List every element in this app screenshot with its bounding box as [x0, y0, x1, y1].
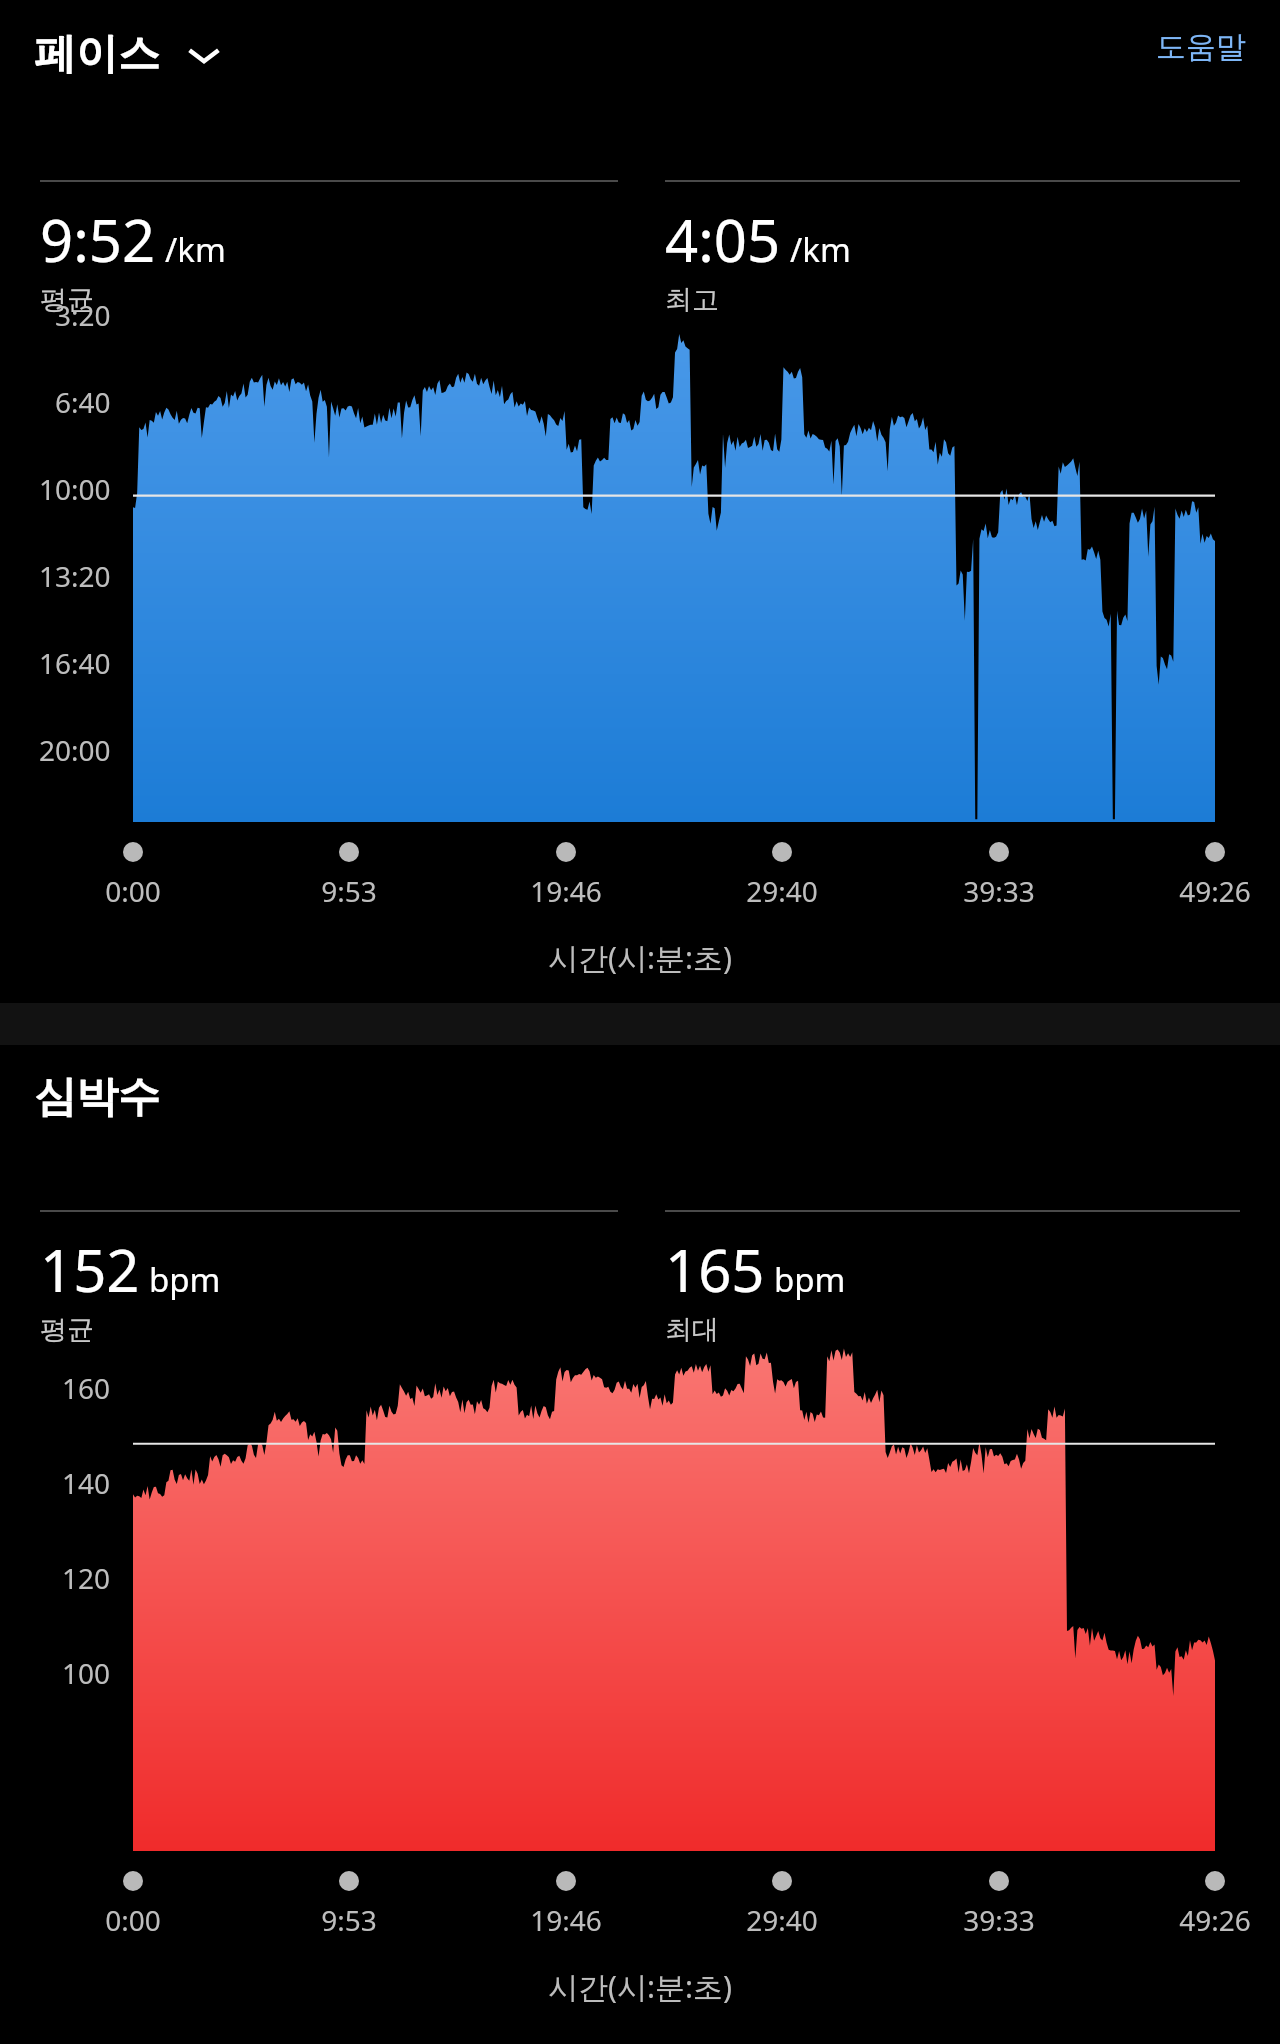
staticText: 49:26 — [1179, 872, 1251, 910]
staticText: 평균 — [40, 283, 94, 317]
staticText: 16:40 — [39, 644, 111, 682]
staticText: 9:52 — [40, 200, 156, 279]
staticText: 페이스 — [34, 28, 160, 81]
staticText: 최고 — [665, 283, 719, 317]
staticText: 49:26 — [1179, 1901, 1251, 1939]
staticText: 3:20 — [55, 296, 111, 334]
staticText: 0:00 — [105, 872, 161, 910]
staticText: 9:53 — [321, 872, 377, 910]
staticText: 29:40 — [746, 872, 818, 910]
staticText: /km — [790, 227, 851, 272]
staticText: 최대 — [665, 1313, 719, 1347]
staticText: bpm — [149, 1257, 221, 1302]
staticText: 9:53 — [321, 1901, 377, 1939]
staticText: 시간(시:분:초) — [548, 1966, 733, 2007]
staticText: 0:00 — [105, 1901, 161, 1939]
staticText: 152 — [40, 1230, 140, 1309]
staticText: 165 — [665, 1230, 765, 1309]
staticText: 19:46 — [530, 1901, 602, 1939]
staticText: 도움말 — [1156, 28, 1246, 66]
staticText: 시간(시:분:초) — [548, 937, 733, 978]
staticText: 10:00 — [39, 470, 111, 508]
staticText: 19:46 — [530, 872, 602, 910]
staticText: /km — [165, 227, 226, 272]
staticText: 39:33 — [963, 1901, 1035, 1939]
staticText: bpm — [774, 1257, 846, 1302]
other: Change metric — [186, 43, 222, 67]
button[interactable]: 심박수 — [34, 1067, 174, 1132]
staticText: 13:20 — [39, 557, 111, 595]
staticText: 160 — [62, 1369, 111, 1407]
staticText: 140 — [62, 1464, 111, 1502]
staticText: 평균 — [40, 1313, 94, 1347]
staticText: 6:40 — [55, 383, 111, 421]
staticText: 39:33 — [963, 872, 1035, 910]
staticText: 29:40 — [746, 1901, 818, 1939]
button[interactable]: 페이스 — [34, 24, 236, 89]
staticText: 4:05 — [665, 200, 781, 279]
staticText: 100 — [62, 1654, 111, 1692]
staticText: 120 — [62, 1559, 111, 1597]
staticText: 심박수 — [34, 1071, 160, 1124]
staticText: 20:00 — [39, 731, 111, 769]
button[interactable]: 도움말 — [1148, 22, 1254, 72]
